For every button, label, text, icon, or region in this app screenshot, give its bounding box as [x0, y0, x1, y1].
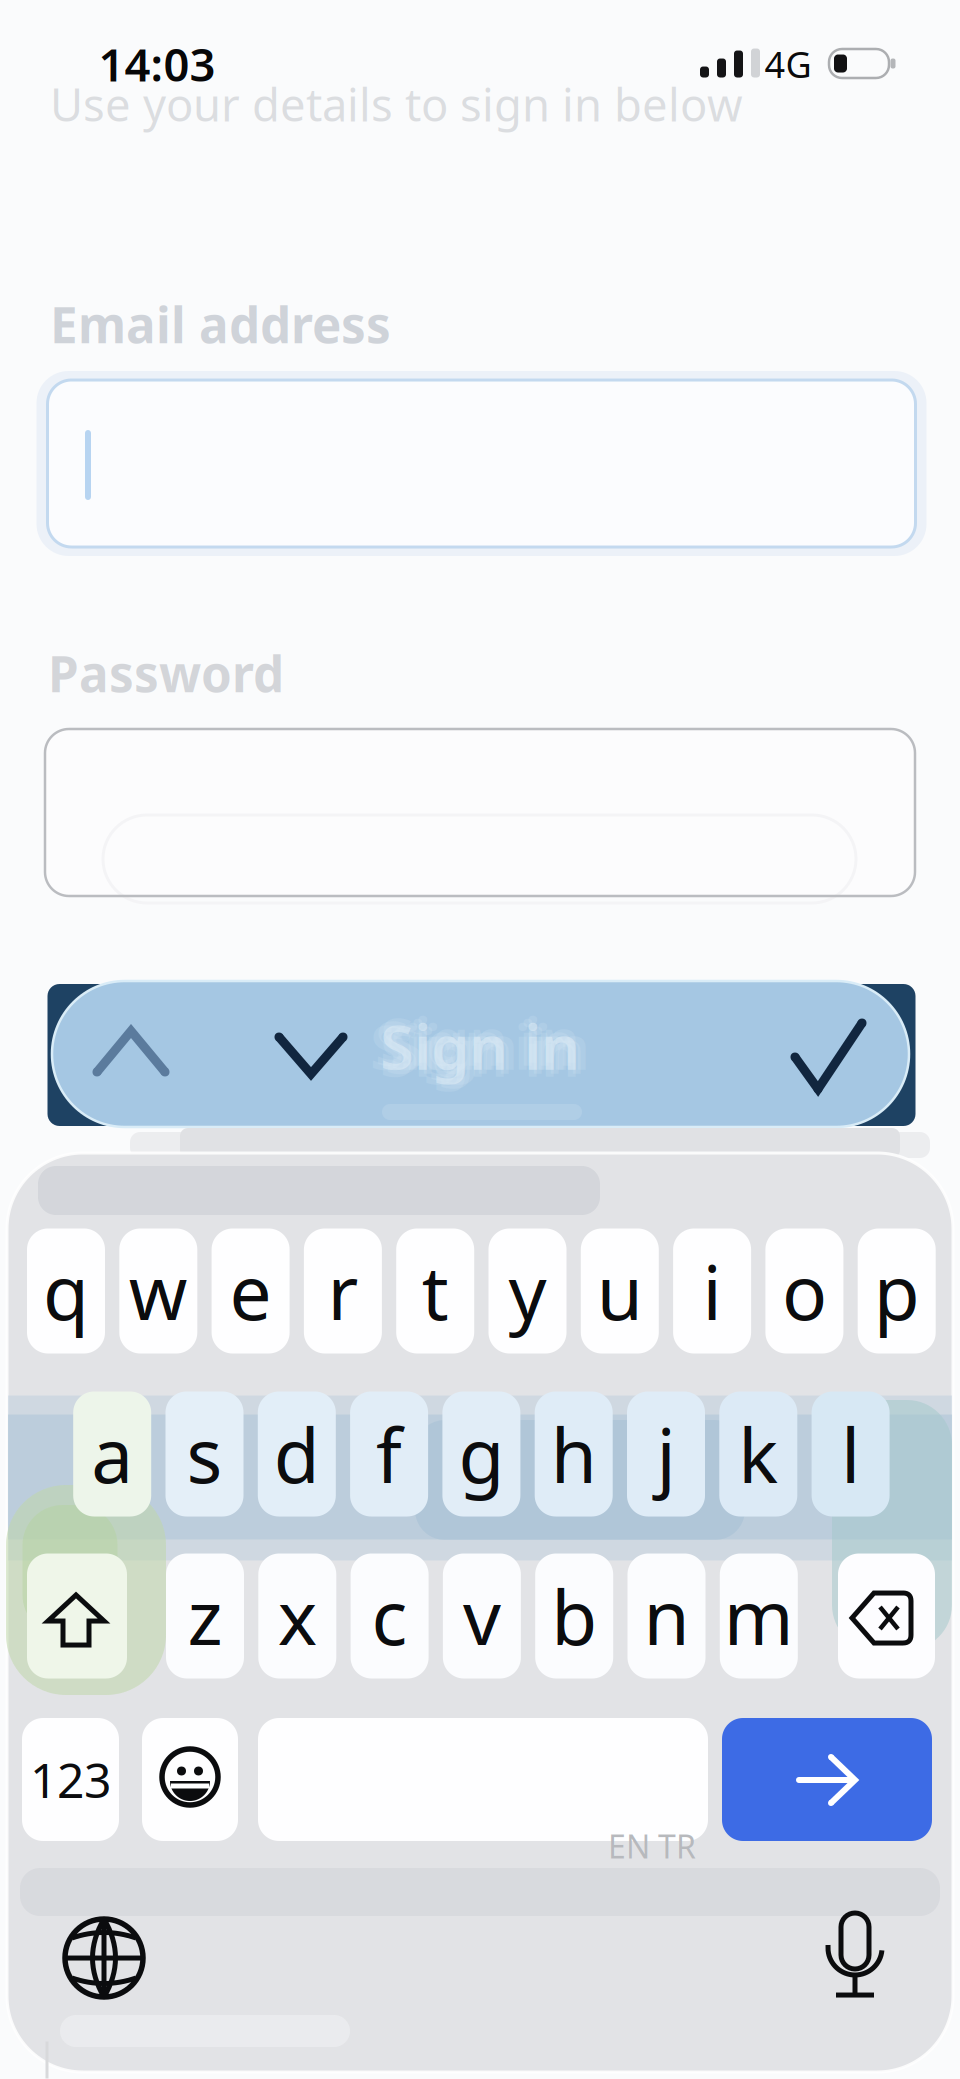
staticText: u: [597, 1241, 643, 1341]
button[interactable]: o: [765, 1228, 843, 1353]
button[interactable]: [0, 0, 960, 2079]
staticText: v: [463, 1566, 501, 1666]
button[interactable]: m: [720, 1553, 798, 1678]
button[interactable]: [258, 1718, 708, 1841]
button[interactable]: [0, 0, 960, 2079]
staticText: Sign in: [370, 1005, 570, 1087]
staticText: 4G: [764, 40, 811, 88]
staticText: z: [187, 1566, 222, 1666]
staticText: Sign in: [380, 1012, 580, 1094]
staticText: h: [551, 1404, 597, 1504]
staticText: y: [508, 1241, 546, 1341]
button[interactable]: i: [673, 1228, 751, 1353]
staticText: f: [376, 1404, 402, 1504]
staticText: e: [230, 1241, 272, 1341]
button[interactable]: c: [351, 1553, 429, 1678]
staticText: x: [278, 1566, 317, 1666]
button[interactable]: t: [396, 1228, 474, 1353]
staticText: l: [841, 1404, 860, 1504]
staticText: Sign in: [380, 998, 580, 1080]
button[interactable]: s: [165, 1391, 243, 1516]
staticText: b: [551, 1566, 597, 1666]
button[interactable]: 123: [22, 1718, 119, 1841]
staticText: c: [372, 1566, 408, 1666]
staticText: a: [91, 1404, 133, 1504]
staticText: p: [874, 1241, 920, 1341]
button[interactable]: [0, 0, 960, 2079]
button[interactable]: [0, 0, 960, 2079]
button[interactable]: y: [488, 1228, 566, 1353]
button[interactable]: v: [443, 1553, 521, 1678]
button[interactable]: r: [304, 1228, 382, 1353]
button[interactable]: e: [212, 1228, 290, 1353]
staticText: 123: [30, 1748, 111, 1811]
staticText: 14:03: [98, 34, 215, 94]
staticText: EN TR: [608, 1825, 696, 1867]
staticText: j: [656, 1404, 675, 1504]
button[interactable]: n: [627, 1553, 705, 1678]
button[interactable]: w: [119, 1228, 197, 1353]
staticText: k: [738, 1404, 778, 1504]
staticText: Sign in: [375, 1001, 575, 1083]
staticText: g: [458, 1404, 504, 1504]
staticText: q: [43, 1241, 89, 1341]
button[interactable]: g: [442, 1391, 520, 1516]
staticText: Email address: [50, 291, 391, 357]
staticText: Sign in: [380, 1005, 580, 1087]
staticText: i: [703, 1241, 722, 1341]
button[interactable]: [0, 0, 960, 2079]
button[interactable]: q: [27, 1228, 105, 1353]
staticText: s: [186, 1404, 222, 1504]
staticText: t: [422, 1241, 449, 1341]
button[interactable]: [0, 0, 960, 2079]
button[interactable]: h: [535, 1391, 613, 1516]
button[interactable]: d: [258, 1391, 336, 1516]
button[interactable]: [0, 0, 960, 2079]
button[interactable]: [0, 0, 960, 2079]
button[interactable]: z: [166, 1553, 244, 1678]
staticText: Password: [48, 640, 284, 706]
button[interactable]: [0, 0, 960, 2079]
staticText: o: [782, 1241, 827, 1341]
button[interactable]: l: [812, 1391, 890, 1516]
button[interactable]: f: [350, 1391, 428, 1516]
staticText: r: [327, 1241, 358, 1341]
staticText: Sign in: [385, 1009, 585, 1091]
button[interactable]: [0, 0, 960, 2079]
staticText: m: [724, 1566, 794, 1666]
button[interactable]: b: [535, 1553, 613, 1678]
button[interactable]: k: [719, 1391, 797, 1516]
button[interactable]: p: [858, 1228, 936, 1353]
staticText: w: [129, 1241, 188, 1341]
button[interactable]: [0, 0, 960, 2079]
button[interactable]: a: [73, 1391, 151, 1516]
staticText: d: [274, 1404, 320, 1504]
staticText: n: [643, 1566, 689, 1666]
button[interactable]: x: [258, 1553, 336, 1678]
button[interactable]: j: [627, 1391, 705, 1516]
staticText: Use your details to sign in below: [50, 74, 743, 134]
button[interactable]: u: [581, 1228, 659, 1353]
staticText: Sign in: [390, 1005, 590, 1087]
